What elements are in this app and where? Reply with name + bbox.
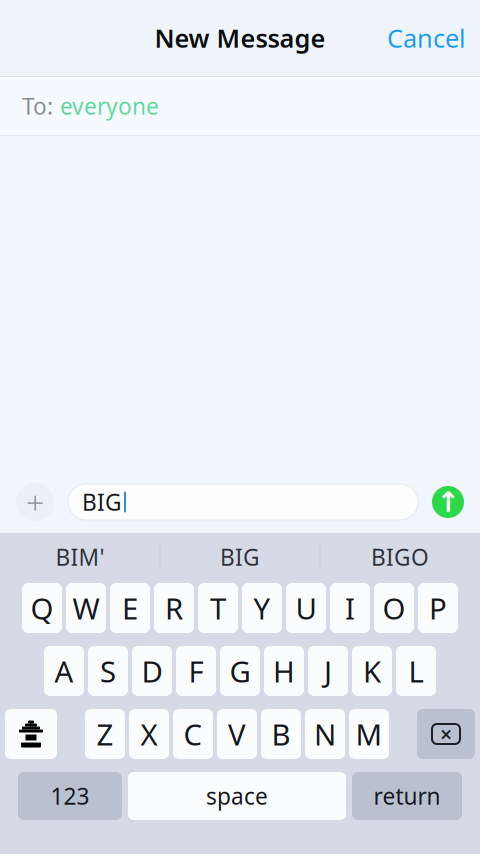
staticText: Cancel — [387, 21, 466, 55]
button[interactable]: N — [305, 709, 345, 759]
staticText: A — [54, 651, 73, 690]
button[interactable]: 123 — [18, 772, 122, 820]
button[interactable]: B — [261, 709, 301, 759]
staticText: New Message — [154, 21, 325, 55]
button[interactable]: BIGO — [320, 535, 479, 579]
staticText: X — [140, 714, 157, 753]
button[interactable]: Delete — [417, 709, 475, 759]
button[interactable]: BIM' — [0, 535, 159, 579]
staticText: E — [122, 588, 138, 627]
button[interactable]: Y — [242, 583, 282, 633]
staticText: Q — [30, 588, 53, 627]
staticText: C — [183, 714, 202, 753]
button[interactable]: Message text field — [68, 484, 418, 520]
staticText: BIG — [220, 542, 260, 572]
staticText: F — [188, 651, 203, 690]
button[interactable]: D — [132, 646, 172, 696]
staticText: B — [271, 714, 290, 753]
button[interactable]: S — [88, 646, 128, 696]
staticText: ↑ — [436, 486, 459, 518]
staticText: 123 — [50, 781, 89, 811]
button[interactable]: Q — [22, 583, 62, 633]
staticText: S — [100, 651, 116, 690]
button[interactable]: F — [176, 646, 216, 696]
button[interactable]: BIG — [160, 535, 319, 579]
staticText: J — [324, 651, 332, 690]
button[interactable]: G — [220, 646, 260, 696]
staticText: L — [408, 651, 423, 690]
button[interactable]: K — [352, 646, 392, 696]
staticText: × — [440, 720, 452, 748]
staticText: space — [206, 781, 268, 811]
button[interactable]: X — [129, 709, 169, 759]
button[interactable]: To: — [0, 77, 480, 135]
button[interactable]: Send — [432, 486, 464, 518]
button[interactable]: space — [128, 772, 346, 820]
staticText: + — [26, 481, 44, 523]
button[interactable]: U — [286, 583, 326, 633]
staticText: T — [210, 588, 226, 627]
button[interactable]: H — [264, 646, 304, 696]
button[interactable]: L — [396, 646, 436, 696]
staticText: I — [345, 588, 355, 627]
staticText: everyone — [60, 91, 159, 121]
staticText: Z — [96, 714, 113, 753]
staticText: W — [72, 588, 99, 627]
button[interactable]: I — [330, 583, 370, 633]
staticText: BIGO — [371, 542, 429, 572]
staticText: return — [373, 781, 440, 811]
button[interactable]: O — [374, 583, 414, 633]
button[interactable]: A — [44, 646, 84, 696]
button[interactable]: E — [110, 583, 150, 633]
staticText: V — [228, 714, 246, 753]
staticText: G — [229, 651, 250, 690]
button[interactable]: Add attachment — [16, 483, 54, 521]
button[interactable]: P — [418, 583, 458, 633]
button[interactable]: R — [154, 583, 194, 633]
staticText: P — [429, 588, 447, 627]
button[interactable]: Shift — [5, 709, 57, 759]
button[interactable]: C — [173, 709, 213, 759]
staticText: D — [141, 651, 162, 690]
staticText: K — [363, 651, 381, 690]
staticText: BIM' — [55, 542, 104, 572]
staticText: N — [314, 714, 336, 753]
button[interactable]: return — [352, 772, 462, 820]
staticText: U — [295, 588, 316, 627]
staticText: BIG — [82, 487, 122, 517]
button[interactable]: T — [198, 583, 238, 633]
button[interactable]: J — [308, 646, 348, 696]
staticText: O — [382, 588, 405, 627]
button[interactable]: Z — [85, 709, 125, 759]
staticText: R — [165, 588, 183, 627]
staticText: H — [273, 651, 295, 690]
button[interactable]: V — [217, 709, 257, 759]
staticText: M — [355, 714, 382, 753]
button[interactable]: Cancel — [373, 13, 480, 63]
staticText: Y — [253, 588, 270, 627]
button[interactable]: W — [66, 583, 106, 633]
button[interactable]: M — [349, 709, 389, 759]
staticText: To: — [22, 91, 53, 121]
